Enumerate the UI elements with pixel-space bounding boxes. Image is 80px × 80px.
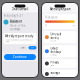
staticText: Risk score (45, 16, 58, 19)
staticText: Later (21, 47, 25, 49)
button[interactable]: Privacy (43, 59, 76, 68)
staticText: Open (30, 47, 34, 49)
staticText: High (45, 24, 47, 27)
staticText: Assistant (10, 20, 22, 23)
staticText: Storage (50, 71, 60, 75)
button[interactable]: Later (19, 46, 27, 49)
staticText: Weekly Report (49, 7, 70, 11)
staticText: 2 items (50, 65, 54, 66)
button[interactable]: Open (28, 46, 36, 49)
staticText: Low (72, 25, 75, 27)
button[interactable]: Storage (43, 70, 76, 78)
staticText: Here is the summary (10, 24, 26, 31)
staticText: Chat Detail (11, 7, 28, 11)
button[interactable]: Device checkup (43, 45, 76, 57)
staticText: Tap to open the full breakdown of this w… (5, 39, 33, 43)
staticText: 3 events (50, 40, 56, 42)
button[interactable]: Unusual activity (43, 31, 76, 43)
staticText: Completed (50, 54, 57, 56)
staticText: Device checkup (50, 47, 61, 54)
button[interactable]: Continue (1, 53, 38, 61)
staticText: Continue (13, 55, 27, 59)
staticText: Weekly report ready (5, 34, 33, 38)
staticText: Unusual activity (50, 32, 61, 40)
staticText: 64% used (50, 75, 57, 77)
staticText: Yesterday 9:41 (3, 14, 23, 17)
staticText: Privacy (50, 61, 58, 64)
